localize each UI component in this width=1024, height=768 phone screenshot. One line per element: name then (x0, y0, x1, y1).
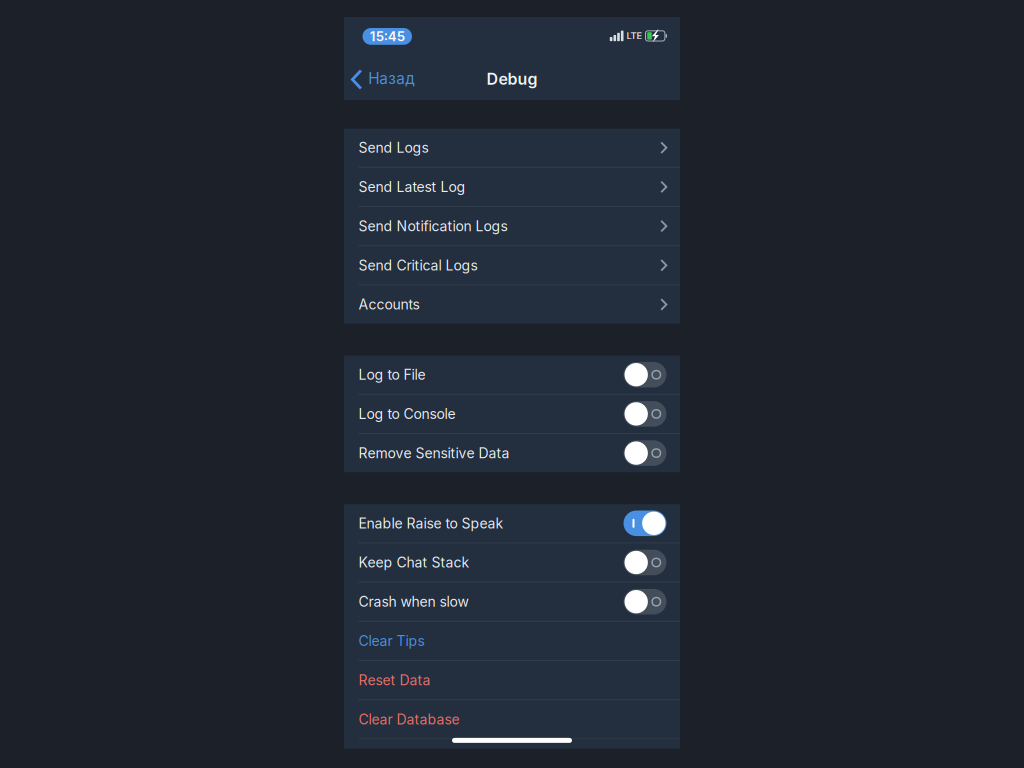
staticText: Remove Sensitive Data (358, 445, 509, 461)
staticText: Accounts (358, 296, 419, 313)
staticText: LTE (626, 30, 642, 42)
button[interactable]: Send Logs (344, 129, 680, 167)
button[interactable]: Clear Database (344, 700, 680, 738)
button[interactable]: Keep Chat Stack (344, 543, 680, 582)
button[interactable]: Log to Console (344, 395, 680, 433)
staticText: Keep Chat Stack (358, 554, 469, 571)
staticText: Reset Data (358, 672, 430, 688)
staticText: Send Latest Log (358, 178, 465, 195)
button[interactable]: Send Critical Logs (344, 246, 680, 284)
staticText: Log to File (358, 366, 425, 383)
button[interactable]: Accounts (344, 285, 680, 324)
button[interactable]: Clear Tips (344, 622, 680, 660)
staticText: Enable Raise to Speak (358, 515, 503, 532)
button[interactable]: Enable Raise to Speak (344, 504, 680, 542)
staticText: Log to Console (358, 405, 455, 422)
staticText: Send Logs (358, 139, 428, 156)
button[interactable]: Send Latest Log (344, 168, 680, 206)
staticText: Clear Database (358, 711, 459, 728)
staticText: Crash when slow (358, 593, 468, 610)
staticText: Clear Tips (358, 632, 424, 649)
staticText: Send Critical Logs (358, 257, 477, 274)
staticText: 15:45 (370, 28, 405, 44)
staticText: Send Notification Logs (358, 218, 507, 234)
button[interactable]: Назад (344, 61, 425, 100)
staticText: Debug (486, 69, 537, 89)
staticText: Назад (368, 69, 415, 88)
button[interactable]: Send Notification Logs (344, 207, 680, 245)
button[interactable]: Log to File (344, 356, 680, 394)
button[interactable]: Remove Sensitive Data (344, 434, 680, 472)
button[interactable]: Reset Data (344, 661, 680, 699)
button[interactable]: Crash when slow (344, 583, 680, 621)
